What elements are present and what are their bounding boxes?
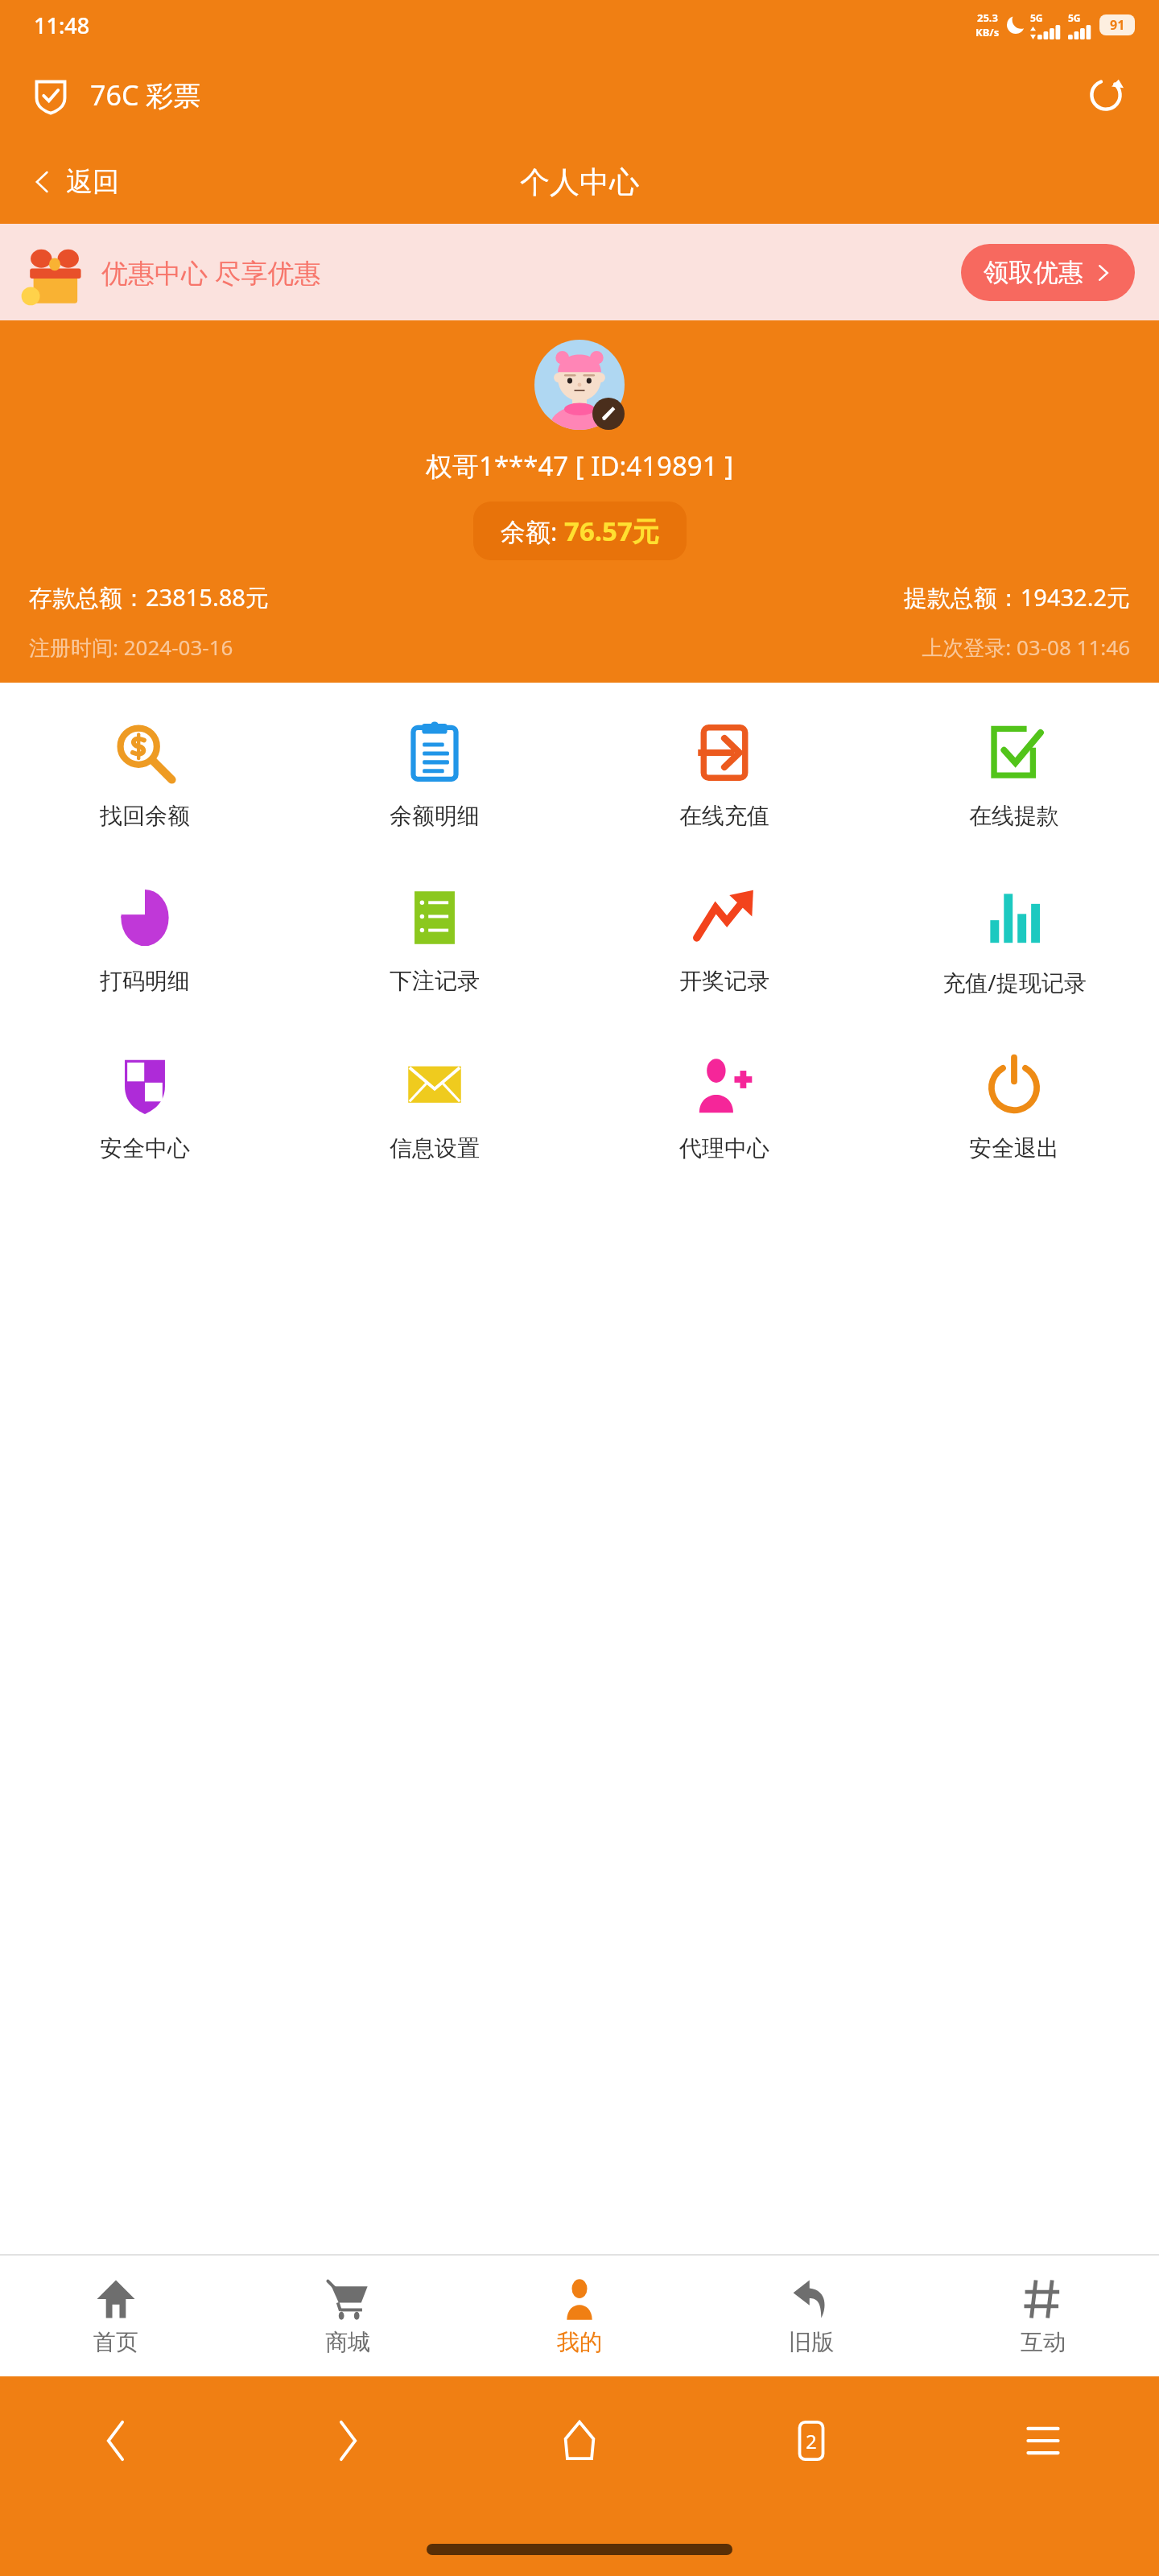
button[interactable]: 安全退出: [869, 1036, 1159, 1180]
button[interactable]: 商城: [232, 2256, 464, 2376]
button[interactable]: 互动: [927, 2256, 1159, 2376]
button[interactable]: Forward: [232, 2401, 464, 2481]
staticText: 安全中心: [100, 1134, 190, 1162]
staticText: 提款总额：19432.2元: [579, 581, 1130, 613]
staticText: 代理中心: [679, 1134, 769, 1162]
button[interactable]: 开奖记录: [579, 869, 869, 1013]
button[interactable]: 我的: [464, 2256, 695, 2376]
button[interactable]: 充值/提现记录: [869, 869, 1159, 1015]
button[interactable]: Refresh: [1082, 71, 1130, 119]
staticText: 充值/提现记录: [942, 967, 1087, 997]
staticText: 个人中心: [520, 163, 639, 201]
staticText: 优惠中心 尽享优惠: [101, 254, 321, 291]
staticText: 余额:: [501, 514, 564, 548]
button[interactable]: 找回余额: [0, 704, 290, 848]
button[interactable]: 旧版: [695, 2256, 927, 2376]
staticText: 在线充值: [679, 802, 769, 830]
button[interactable]: Home: [464, 2401, 695, 2481]
staticText: 安全退出: [969, 1134, 1059, 1162]
button[interactable]: 打码明细: [0, 869, 290, 1013]
button[interactable]: 返回: [24, 160, 126, 204]
button[interactable]: Menu: [927, 2401, 1159, 2481]
staticText: 余额明细: [390, 802, 480, 830]
button[interactable]: 在线充值: [579, 704, 869, 848]
staticText: 注册时间: 2024-03-16: [29, 633, 579, 662]
staticText: 权哥1***47 [ ID:419891 ]: [426, 448, 734, 484]
staticText: 商城: [325, 2328, 370, 2356]
button[interactable]: 下注记录: [290, 869, 579, 1013]
button[interactable]: 安全中心: [0, 1036, 290, 1180]
staticText: 2: [806, 2428, 817, 2454]
staticText: 76.57元: [564, 513, 659, 549]
staticText: 下注记录: [390, 967, 480, 995]
staticText: 互动: [1021, 2328, 1066, 2356]
button[interactable]: 代理中心: [579, 1036, 869, 1180]
button[interactable]: 余额:: [473, 502, 687, 560]
staticText: 领取优惠: [984, 257, 1083, 288]
staticText: 开奖记录: [679, 967, 769, 995]
staticText: 旧版: [789, 2328, 834, 2356]
button[interactable]: 余额明细: [290, 704, 579, 848]
staticText: 打码明细: [100, 967, 190, 995]
button[interactable]: Edit profile: [592, 398, 625, 430]
staticText: KB/s: [975, 25, 1000, 39]
staticText: 91: [1110, 16, 1125, 34]
staticText: 11:48: [34, 10, 90, 40]
button[interactable]: Avatar: [534, 340, 625, 430]
staticText: 存款总额：23815.88元: [29, 581, 579, 613]
staticText: 25.3: [977, 10, 998, 25]
staticText: 5G: [1068, 11, 1081, 24]
staticText: 在线提款: [969, 802, 1059, 830]
staticText: 上次登录: 03-08 11:46: [579, 633, 1130, 662]
staticText: 首页: [93, 2328, 138, 2356]
button[interactable]: Tabs: [695, 2401, 927, 2481]
staticText: 找回余额: [100, 802, 190, 830]
staticText: 76C 彩票: [90, 76, 201, 114]
button[interactable]: Back: [0, 2401, 232, 2481]
button[interactable]: 在线提款: [869, 704, 1159, 848]
staticText: 5G: [1030, 11, 1043, 24]
button[interactable]: 首页: [0, 2256, 232, 2376]
staticText: 我的: [557, 2328, 602, 2356]
button[interactable]: 信息设置: [290, 1036, 579, 1180]
button[interactable]: 优惠中心 尽享优惠: [0, 224, 1159, 320]
button[interactable]: 领取优惠: [961, 244, 1135, 301]
staticText: 信息设置: [390, 1134, 480, 1162]
staticText: 返回: [66, 165, 119, 199]
